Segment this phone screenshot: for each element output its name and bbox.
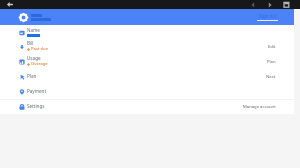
button[interactable]: Next — [266, 1, 274, 9]
button[interactable]: Sign out — [257, 13, 278, 21]
button[interactable]: Back — [5, 0, 14, 9]
staticText: Plan — [27, 73, 37, 79]
button[interactable]: Previous — [249, 1, 257, 9]
staticText: Manage account — [243, 104, 276, 110]
button[interactable]: Restore window — [283, 1, 291, 9]
staticText: Past due — [31, 46, 49, 52]
staticText: Name — [27, 27, 40, 33]
staticText: Overage — [31, 61, 48, 67]
button[interactable]: Payment — [0, 85, 294, 99]
button[interactable]: Name — [0, 25, 294, 40]
staticText: Next — [266, 74, 276, 80]
staticText: Settings — [27, 103, 45, 109]
staticText: Usage — [27, 55, 41, 61]
button[interactable]: Usage — [0, 54, 294, 69]
staticText: Payment — [27, 88, 47, 94]
button[interactable]: Settings — [0, 100, 294, 114]
staticText: Sign out — [259, 13, 277, 19]
button[interactable]: Plan — [0, 69, 294, 85]
staticText: Bill — [27, 40, 34, 46]
button[interactable]: Bill — [0, 40, 294, 54]
staticText: Plan — [267, 59, 276, 65]
staticText: Edit — [268, 44, 276, 50]
